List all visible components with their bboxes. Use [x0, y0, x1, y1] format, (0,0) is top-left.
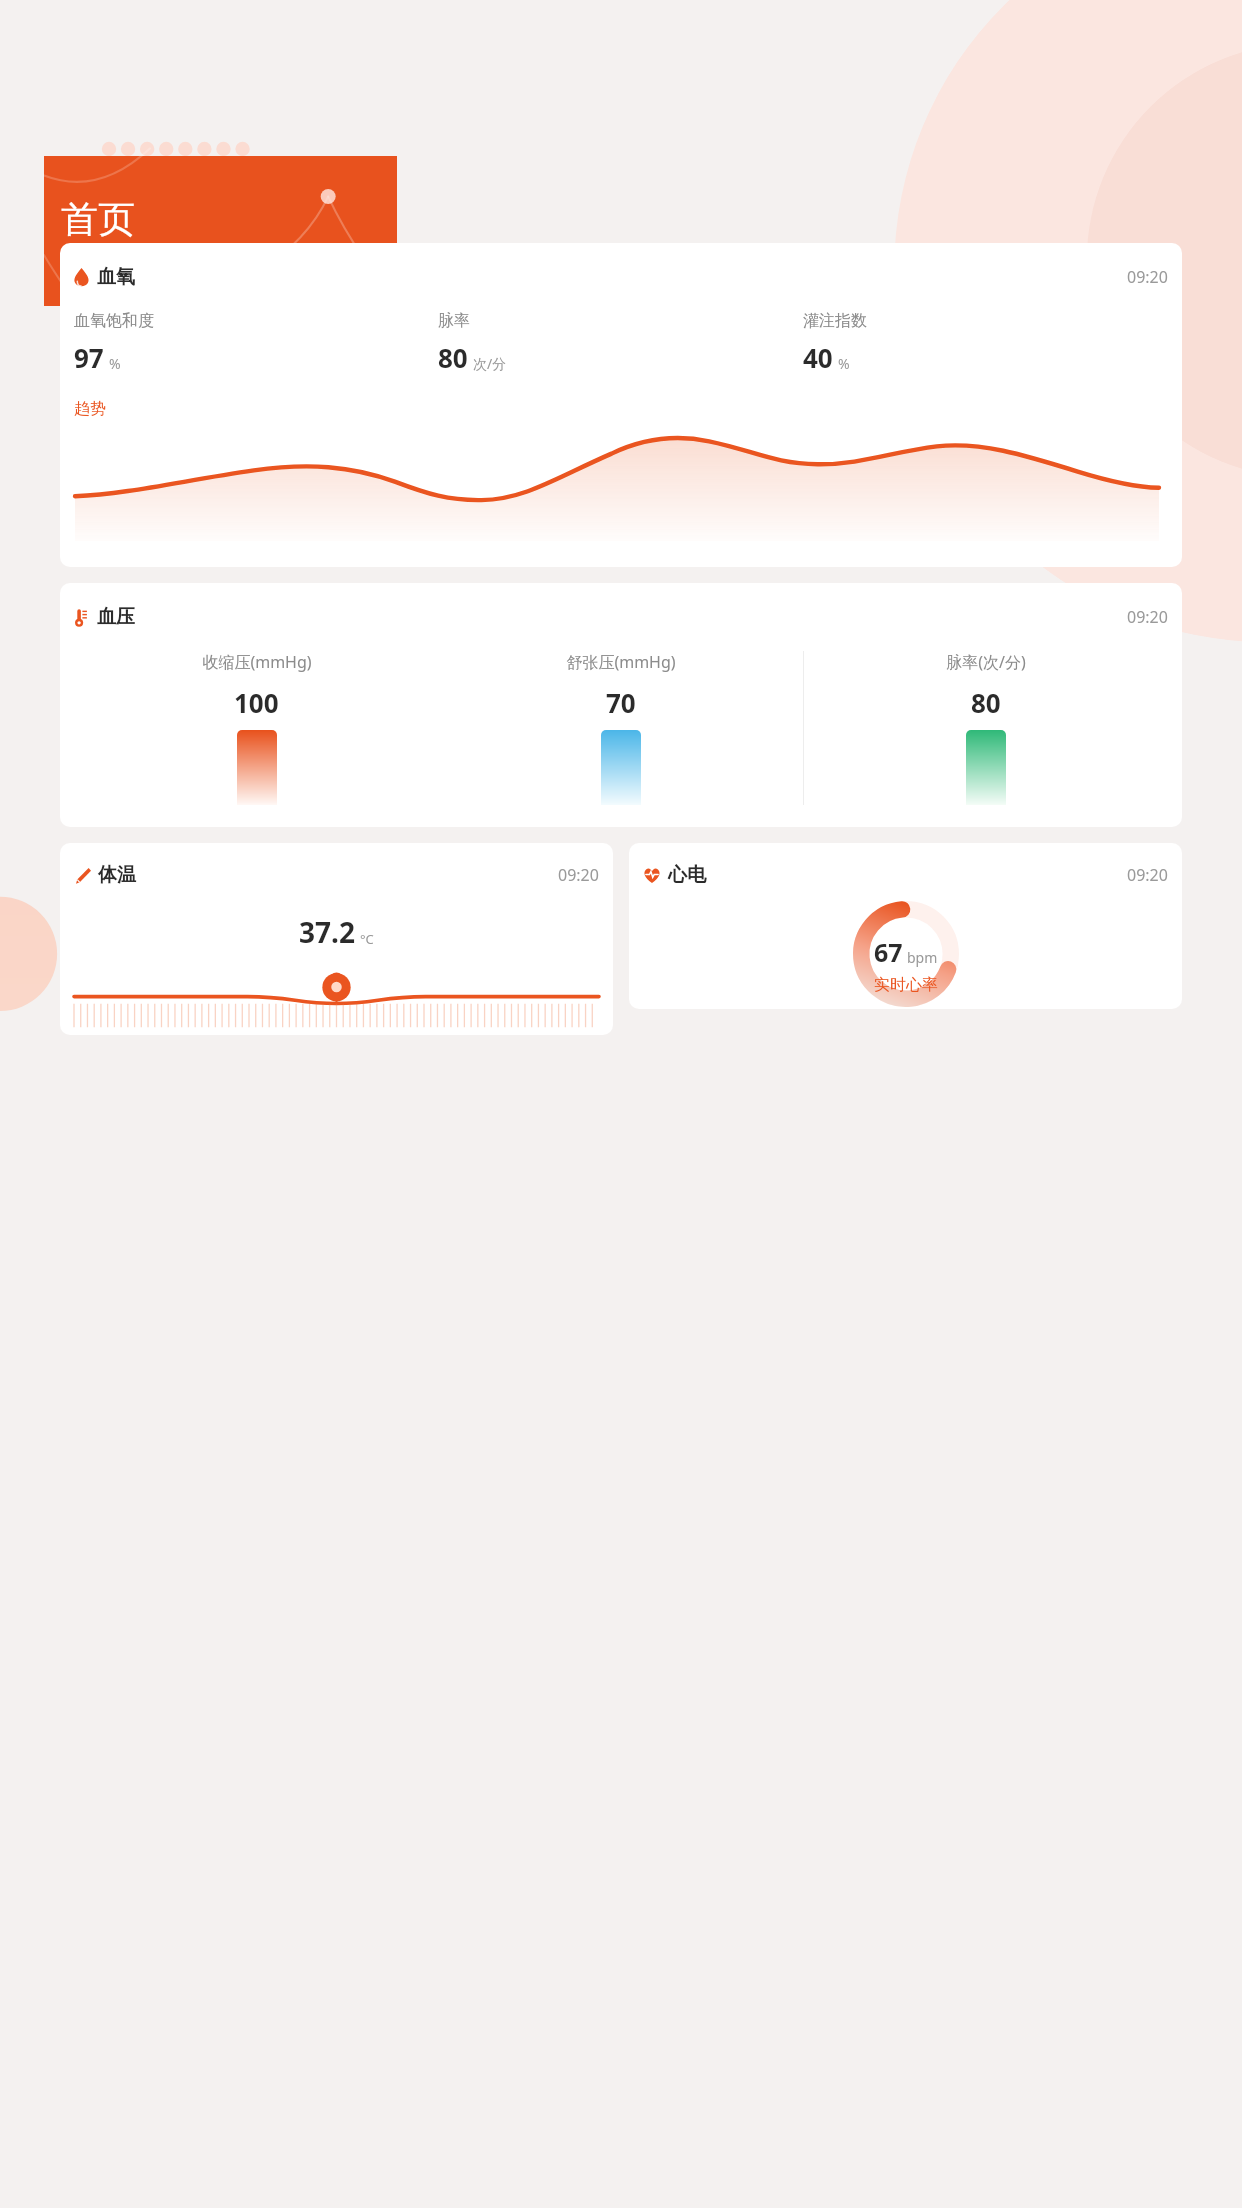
staticText: 09:20	[1127, 606, 1168, 628]
button[interactable]: 血压	[60, 583, 1182, 827]
button[interactable]: 体温	[60, 843, 613, 1035]
staticText: 09:20	[558, 864, 599, 886]
staticText: 舒张压(mmHg)	[566, 651, 676, 673]
staticText: 09:20	[1127, 864, 1168, 886]
staticText: 趋势	[74, 399, 106, 419]
staticText: 67	[874, 935, 903, 969]
staticText: °C	[360, 930, 374, 948]
staticText: 97	[74, 340, 104, 375]
staticText: 收缩压(mmHg)	[202, 651, 312, 673]
staticText: bpm	[907, 948, 938, 967]
staticText: 80	[438, 340, 468, 375]
staticText: 首页	[61, 196, 135, 243]
staticText: 血氧	[97, 265, 135, 289]
staticText: 100	[234, 685, 279, 720]
staticText: %	[109, 354, 121, 373]
staticText: 脉率	[438, 311, 470, 331]
staticText: 37.2	[299, 913, 355, 951]
staticText: 血氧饱和度	[74, 311, 154, 331]
staticText: 70	[606, 685, 636, 720]
button[interactable]: 心电	[629, 843, 1182, 1009]
staticText: 40	[803, 340, 833, 375]
staticText: 灌注指数	[803, 311, 867, 331]
staticText: 心电	[668, 863, 706, 887]
staticText: 次/分	[473, 354, 507, 373]
staticText: 脉率(次/分)	[946, 651, 1026, 673]
staticText: 血压	[97, 605, 135, 629]
staticText: 80	[971, 685, 1001, 720]
staticText: 实时心率	[874, 975, 938, 995]
staticText: 体温	[98, 863, 136, 887]
staticText: %	[838, 354, 850, 373]
staticText: 09:20	[1127, 266, 1168, 288]
button[interactable]: 血氧	[60, 243, 1182, 567]
